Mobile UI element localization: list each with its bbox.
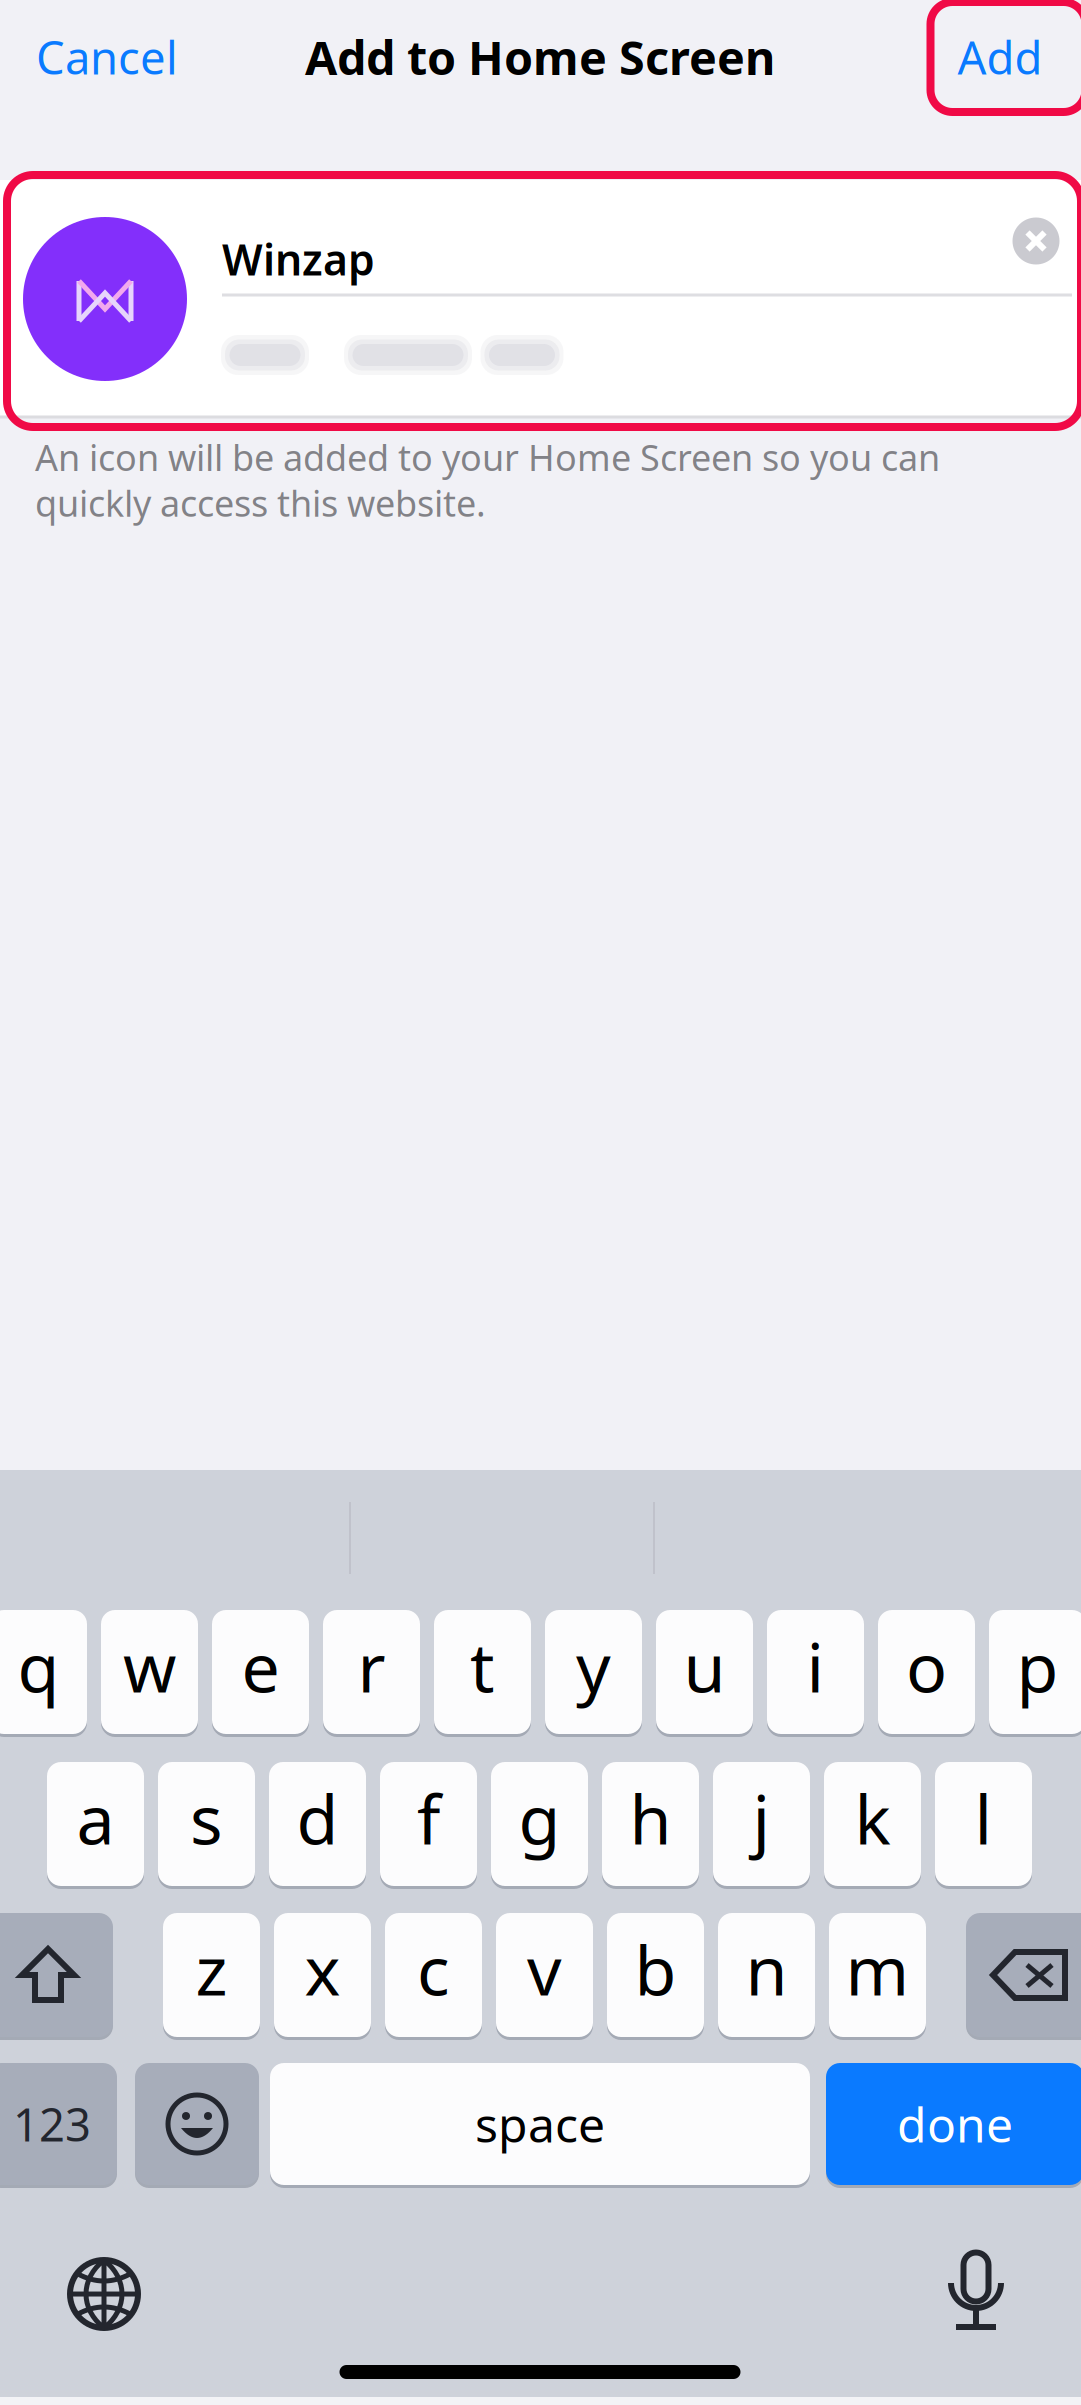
staticText: p — [1016, 1621, 1058, 1711]
staticText: x — [304, 1924, 340, 2014]
button[interactable]: v — [496, 1911, 593, 2038]
button[interactable]: y — [545, 1608, 642, 1735]
staticText: Add to Home Screen — [305, 26, 775, 88]
button[interactable]: q — [0, 1608, 87, 1735]
staticText: i — [806, 1621, 824, 1711]
staticText: z — [195, 1924, 227, 2014]
button[interactable]: l — [935, 1760, 1032, 1887]
button[interactable]: Emoji — [135, 2061, 259, 2186]
staticText: Cancel — [36, 27, 178, 87]
button[interactable]: s — [158, 1760, 255, 1887]
staticText: quickly access this website. — [35, 479, 486, 527]
button[interactable]: b — [607, 1911, 704, 2038]
button[interactable]: Address — [222, 319, 1070, 391]
button[interactable]: x — [274, 1911, 371, 2038]
staticText: a — [76, 1773, 114, 1863]
button[interactable]: u — [656, 1608, 753, 1735]
staticText: r — [357, 1621, 385, 1711]
button[interactable]: Dictation — [936, 2246, 1016, 2336]
button[interactable]: o — [878, 1608, 975, 1735]
staticText: m — [845, 1924, 909, 2014]
button[interactable]: Change keyboard — [67, 2257, 141, 2331]
staticText: l — [974, 1773, 992, 1863]
button[interactable]: Shift — [0, 1911, 113, 2038]
staticText: y — [576, 1621, 611, 1711]
staticText: An icon will be added to your Home Scree… — [35, 433, 940, 481]
staticText: Add — [957, 27, 1042, 87]
button[interactable]: p — [989, 1608, 1081, 1735]
button[interactable]: done — [826, 2061, 1081, 2186]
staticText: w — [123, 1621, 176, 1711]
staticText: g — [518, 1773, 560, 1863]
button[interactable]: 123 — [0, 2061, 117, 2186]
button[interactable]: k — [824, 1760, 921, 1887]
button[interactable]: Winzap — [222, 227, 1070, 291]
staticText: f — [417, 1773, 440, 1863]
button[interactable]: a — [47, 1760, 144, 1887]
staticText: j — [752, 1773, 770, 1863]
button[interactable]: e — [212, 1608, 309, 1735]
button[interactable]: z — [163, 1911, 260, 2038]
button[interactable]: d — [269, 1760, 366, 1887]
staticText: Winzap — [222, 231, 375, 287]
staticText: s — [190, 1773, 223, 1863]
button[interactable]: j — [713, 1760, 810, 1887]
staticText: 123 — [13, 2094, 91, 2154]
button[interactable]: Cancel — [20, 7, 194, 107]
button[interactable]: m — [829, 1911, 926, 2038]
staticText: o — [906, 1621, 947, 1711]
staticText: k — [854, 1773, 890, 1863]
button[interactable]: g — [491, 1760, 588, 1887]
button[interactable]: Add — [935, 7, 1064, 107]
staticText: h — [629, 1773, 671, 1863]
button[interactable]: space — [270, 2061, 810, 2186]
button[interactable]: h — [602, 1760, 699, 1887]
staticText: c — [417, 1924, 450, 2014]
button[interactable]: Delete — [966, 1911, 1081, 2038]
staticText: done — [897, 2092, 1013, 2156]
button[interactable]: n — [718, 1911, 815, 2038]
button[interactable]: c — [385, 1911, 482, 2038]
staticText: n — [745, 1924, 787, 2014]
button[interactable]: f — [380, 1760, 477, 1887]
button[interactable]: t — [434, 1608, 531, 1735]
button[interactable]: r — [323, 1608, 420, 1735]
staticText: t — [470, 1621, 495, 1711]
button[interactable]: i — [767, 1608, 864, 1735]
staticText: v — [527, 1924, 562, 2014]
staticText: d — [296, 1773, 338, 1863]
staticText: b — [634, 1924, 676, 2014]
staticText: q — [17, 1621, 59, 1711]
staticText: e — [241, 1621, 279, 1711]
staticText: space — [475, 2092, 605, 2156]
button[interactable]: w — [101, 1608, 198, 1735]
staticText: u — [683, 1621, 725, 1711]
button[interactable]: Clear text — [1012, 217, 1059, 264]
